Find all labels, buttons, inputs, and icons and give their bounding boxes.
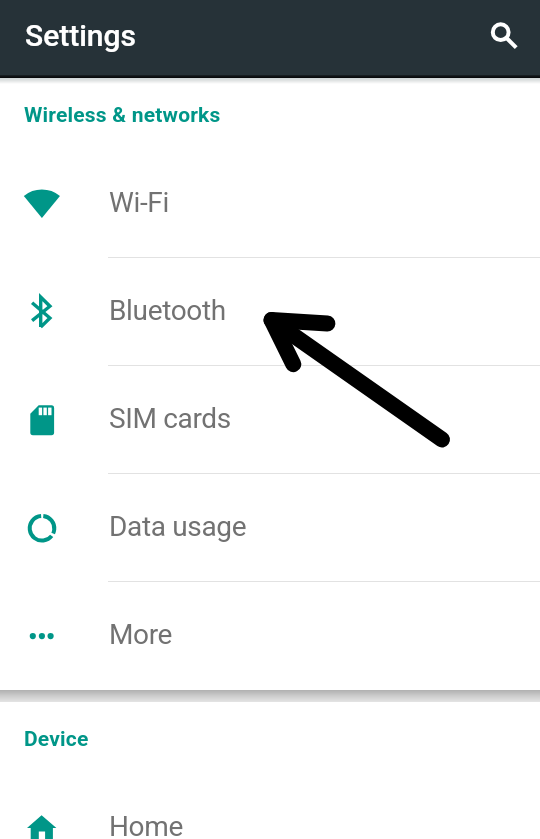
staticText: Wireless & networks — [24, 103, 221, 128]
button[interactable]: Wi-Fi — [0, 149, 540, 257]
button[interactable]: More — [0, 581, 540, 689]
button[interactable]: Home — [0, 773, 540, 839]
staticText: Home — [109, 810, 183, 839]
button[interactable]: SIM cards — [0, 365, 540, 473]
staticText: Settings — [25, 18, 137, 53]
button[interactable]: Bluetooth — [0, 257, 540, 365]
button[interactable]: Search — [473, 5, 529, 61]
staticText: Wi-Fi — [109, 186, 169, 219]
staticText: SIM cards — [109, 402, 231, 435]
staticText: Data usage — [109, 510, 247, 543]
staticText: Bluetooth — [109, 294, 226, 327]
staticText: More — [109, 618, 173, 651]
button[interactable]: Data usage — [0, 473, 540, 581]
staticText: Device — [24, 727, 89, 752]
